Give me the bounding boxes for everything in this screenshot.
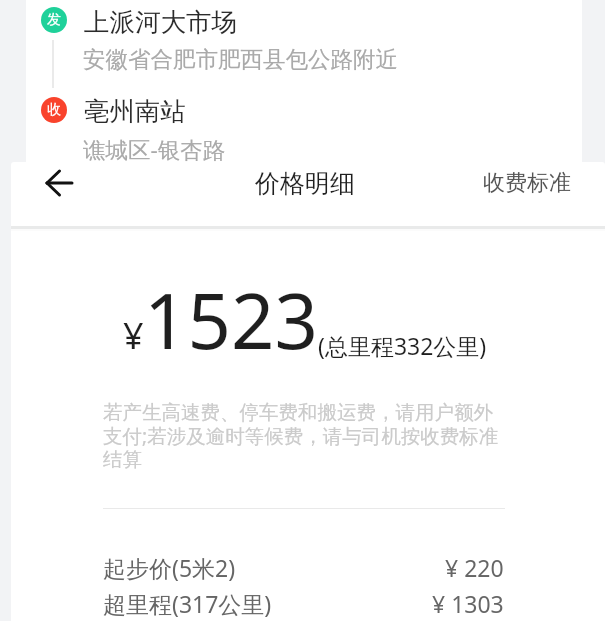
button[interactable]: 收 (26, 90, 582, 162)
button[interactable]: 超里程(317公里) (103, 588, 504, 619)
staticText: ¥ 220 (445, 552, 504, 583)
staticText: 价格明细 (255, 168, 355, 199)
staticText: 若产生高速费、停车费和搬运费，请用户额外支付;若涉及逾时等候费，请与司机按收费标… (103, 400, 501, 472)
staticText: 亳州南站 (84, 95, 186, 127)
button[interactable]: 收费标准 (477, 162, 577, 205)
button[interactable]: Back (36, 162, 84, 207)
staticText: 起步价(5米2) (103, 552, 236, 583)
staticText: 超里程(317公里) (103, 588, 272, 619)
staticText: (总里程332公里) (318, 330, 487, 361)
staticText: 收 (47, 101, 61, 119)
staticText: 谯城区-银杏路 (83, 134, 226, 165)
staticText: 发 (47, 11, 61, 29)
button[interactable]: 发 (26, 0, 582, 84)
staticText: 安徽省合肥市肥西县包公路附近 (83, 45, 398, 73)
staticText: 上派河大市场 (84, 6, 237, 38)
staticText: ¥ 1303 (432, 588, 504, 619)
button[interactable]: 起步价(5米2) (103, 552, 504, 583)
staticText: ¥ (123, 311, 144, 360)
staticText: 1523 (144, 268, 318, 372)
staticText: 收费标准 (483, 169, 571, 197)
